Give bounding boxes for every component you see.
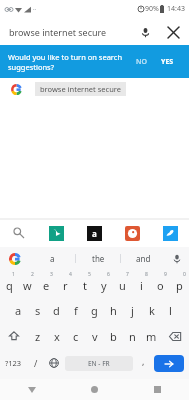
staticText: ·· (33, 5, 37, 13)
staticText: v (92, 329, 98, 344)
staticText: p (176, 278, 183, 293)
button[interactable]: m (142, 323, 161, 349)
button[interactable]: j (123, 297, 142, 323)
staticText: 8 (145, 271, 148, 278)
staticText: 7 (126, 271, 129, 278)
button[interactable]: q (0, 270, 18, 297)
button[interactable]: Back (0, 379, 63, 400)
staticText: h (110, 303, 117, 318)
button[interactable]: ?123 (0, 349, 27, 377)
button[interactable]: / (27, 349, 44, 377)
button[interactable]: Recent apps (126, 379, 189, 400)
staticText: u (119, 278, 126, 293)
button[interactable]: Search (154, 355, 184, 372)
staticText: 90% (145, 4, 159, 14)
staticText: YES (161, 57, 174, 67)
button[interactable]: v (85, 323, 104, 349)
staticText: 3 (50, 271, 53, 278)
button[interactable]: Search (0, 219, 37, 247)
button[interactable]: NO (129, 53, 154, 71)
staticText: n (129, 329, 136, 344)
staticText: b (110, 329, 117, 344)
staticText: j (131, 303, 134, 318)
button[interactable]: the (76, 247, 120, 270)
staticText: browse internet secure (9, 26, 107, 38)
button[interactable]: Google (0, 247, 30, 270)
staticText: k (149, 303, 155, 318)
button[interactable]: l (161, 297, 180, 323)
staticText: x (54, 329, 60, 344)
staticText: a (92, 228, 97, 239)
button[interactable]: c (66, 323, 85, 349)
button[interactable]: n (123, 323, 142, 349)
button[interactable]: o (151, 270, 170, 297)
staticText: e (43, 278, 50, 293)
button[interactable]: Change language (44, 349, 63, 377)
staticText: 4 (69, 271, 72, 278)
staticText: 2 (31, 271, 34, 278)
button[interactable]: YES (154, 53, 181, 71)
staticText: and (136, 253, 151, 264)
staticText: 6 (107, 271, 110, 278)
button[interactable]: g (85, 297, 104, 323)
staticText: s (35, 303, 41, 318)
button[interactable]: s (28, 297, 47, 323)
staticText: d (53, 303, 60, 318)
button[interactable]: Backspace (161, 323, 189, 349)
button[interactable]: e (37, 270, 56, 297)
button[interactable]: z (28, 323, 47, 349)
staticText: z (35, 329, 41, 344)
staticText: a (50, 253, 55, 264)
button[interactable]: f (66, 297, 85, 323)
staticText: / (34, 357, 38, 369)
button[interactable]: DuckDuckGo (113, 219, 151, 247)
button[interactable]: a (30, 247, 75, 270)
button[interactable]: EN - FR (65, 356, 133, 371)
staticText: t (83, 278, 87, 293)
button[interactable]: t (75, 270, 94, 297)
staticText: Would you like to turn on search suggest… (8, 52, 129, 72)
button[interactable]: x (47, 323, 66, 349)
button[interactable]: Home (63, 379, 126, 400)
staticText: ?123 (5, 358, 22, 368)
staticText: 0 (183, 271, 186, 278)
staticText: r (63, 278, 68, 293)
button[interactable]: Amazon (75, 219, 113, 247)
staticText: 14:43 (167, 4, 185, 14)
staticText: c (73, 329, 79, 344)
button[interactable]: k (142, 297, 161, 323)
button[interactable]: Bing (37, 219, 75, 247)
staticText: browse internet secure (40, 84, 121, 94)
button[interactable]: b (104, 323, 123, 349)
staticText: EN - FR (88, 359, 110, 368)
button[interactable]: p (170, 270, 189, 297)
staticText: a (15, 303, 22, 318)
staticText: m (146, 329, 157, 344)
staticText: 5 (88, 271, 91, 278)
staticText: f (74, 303, 78, 318)
button[interactable]: d (47, 297, 66, 323)
staticText: l (169, 303, 172, 318)
button[interactable]: h (104, 297, 123, 323)
button[interactable]: w (18, 270, 37, 297)
button[interactable]: u (113, 270, 132, 297)
staticText: g (91, 303, 98, 318)
staticText: 1 (12, 271, 15, 278)
button[interactable]: Voice input (165, 247, 189, 270)
button[interactable]: i (132, 270, 151, 297)
staticText: i (140, 278, 143, 293)
staticText: the (92, 253, 105, 264)
button[interactable]: browse internet secure (0, 78, 189, 100)
button[interactable]: a (9, 297, 28, 323)
staticText: , (142, 355, 145, 367)
button[interactable]: y (94, 270, 113, 297)
button[interactable]: Twitter (151, 219, 189, 247)
staticText: q (6, 278, 13, 293)
button[interactable]: Shift (0, 323, 28, 349)
button[interactable]: r (56, 270, 75, 297)
staticText: NO (136, 57, 147, 67)
button[interactable]: , (135, 349, 152, 377)
button[interactable]: Clear query (165, 24, 181, 40)
button[interactable]: and (121, 247, 165, 270)
button[interactable]: Voice search (137, 24, 153, 40)
